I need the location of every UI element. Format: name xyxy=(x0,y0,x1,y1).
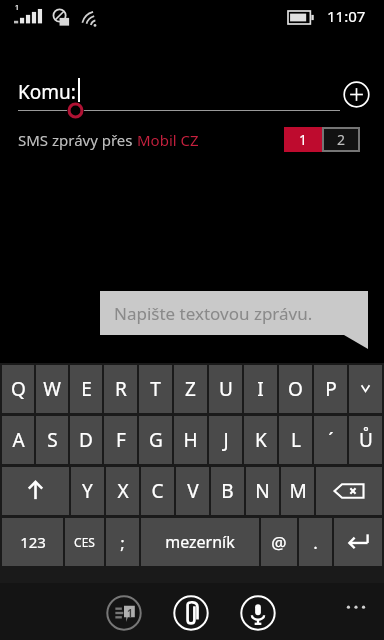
staticText: N xyxy=(255,478,270,504)
staticText: C xyxy=(151,478,164,504)
button[interactable]: More options xyxy=(338,595,374,631)
button[interactable]: K xyxy=(244,416,277,464)
staticText: 1 xyxy=(127,606,133,620)
staticText: U xyxy=(219,376,233,402)
button[interactable]: R xyxy=(104,365,137,413)
staticText: CES xyxy=(74,534,95,550)
button[interactable]: 123 xyxy=(2,518,63,566)
staticText: V xyxy=(187,478,199,504)
button[interactable]: F xyxy=(104,416,137,464)
button[interactable]: O xyxy=(279,365,312,413)
staticText: @ xyxy=(271,531,287,554)
staticText: E xyxy=(81,376,92,402)
staticText: Z xyxy=(185,376,196,402)
staticText: M xyxy=(289,478,307,504)
button[interactable]: Y xyxy=(71,467,104,515)
button[interactable]: L xyxy=(279,416,312,464)
button[interactable]: P xyxy=(314,365,347,413)
button[interactable]: ´ xyxy=(314,416,347,464)
button[interactable]: Attach xyxy=(173,595,209,631)
staticText: Y xyxy=(82,478,93,504)
staticText: 1 xyxy=(299,130,308,149)
button[interactable]: T xyxy=(139,365,172,413)
staticText: P xyxy=(325,376,337,402)
staticText: mezerník xyxy=(165,531,235,553)
button[interactable]: Shift xyxy=(2,467,69,515)
staticText: ; xyxy=(120,531,125,554)
staticText: I xyxy=(257,376,264,402)
staticText: B xyxy=(221,478,234,504)
button[interactable]: B xyxy=(211,467,244,515)
button[interactable]: 1 xyxy=(284,127,322,152)
button[interactable]: X xyxy=(106,467,139,515)
button[interactable]: Add recipient xyxy=(343,81,370,108)
staticText: K xyxy=(255,427,267,453)
staticText: Napište textovou zprávu. xyxy=(114,302,313,325)
staticText: 1 xyxy=(15,3,20,13)
button[interactable]: Ů xyxy=(349,416,382,464)
staticText: A xyxy=(12,427,25,453)
button[interactable]: CES xyxy=(65,518,104,566)
staticText: 123 xyxy=(20,532,46,552)
button[interactable]: J xyxy=(209,416,242,464)
button[interactable]: N xyxy=(246,467,279,515)
staticText: SMS zprávy přes xyxy=(18,130,137,150)
button[interactable]: Z xyxy=(174,365,207,413)
button[interactable]: Backspace xyxy=(316,467,382,515)
button[interactable]: D xyxy=(70,416,102,464)
staticText: H xyxy=(183,427,198,453)
button[interactable]: W xyxy=(36,365,68,413)
button[interactable]: Napište textovou zprávu. xyxy=(100,291,368,335)
staticText: Ů xyxy=(359,427,373,453)
button[interactable]: ; xyxy=(106,518,139,566)
button[interactable]: Send xyxy=(106,595,142,631)
staticText: D xyxy=(79,427,93,453)
staticText: O xyxy=(288,376,303,402)
button[interactable]: mezerník xyxy=(141,518,259,566)
button[interactable]: V xyxy=(176,467,209,515)
staticText: ´ xyxy=(328,427,334,453)
staticText: J xyxy=(223,427,229,453)
button[interactable]: Enter xyxy=(334,518,382,566)
staticText: F xyxy=(116,427,126,453)
staticText: Q xyxy=(11,376,26,402)
staticText: 11:07 xyxy=(327,6,366,26)
button[interactable]: Q xyxy=(2,365,34,413)
staticText: S xyxy=(47,427,58,453)
staticText: Komu: xyxy=(18,79,76,105)
button[interactable]: S xyxy=(36,416,68,464)
button[interactable]: Voice input xyxy=(240,595,276,631)
button[interactable]: M xyxy=(281,467,314,515)
button[interactable]: I xyxy=(244,365,277,413)
button[interactable]: Hide keyboard xyxy=(349,365,382,413)
staticText: . xyxy=(313,531,318,554)
button[interactable]: 2 xyxy=(322,127,360,152)
button[interactable]: @ xyxy=(261,518,297,566)
staticText: 2 xyxy=(337,130,346,149)
button[interactable]: U xyxy=(209,365,242,413)
button[interactable]: . xyxy=(299,518,332,566)
staticText: W xyxy=(43,376,61,402)
staticText: G xyxy=(149,427,163,453)
button[interactable]: A xyxy=(2,416,34,464)
button[interactable]: E xyxy=(70,365,102,413)
staticText: R xyxy=(115,376,127,402)
button[interactable]: C xyxy=(141,467,174,515)
staticText: Mobil CZ xyxy=(137,130,199,150)
staticText: T xyxy=(150,376,161,402)
button[interactable]: G xyxy=(139,416,172,464)
staticText: L xyxy=(291,427,301,453)
staticText: X xyxy=(117,478,129,504)
button[interactable]: H xyxy=(174,416,207,464)
